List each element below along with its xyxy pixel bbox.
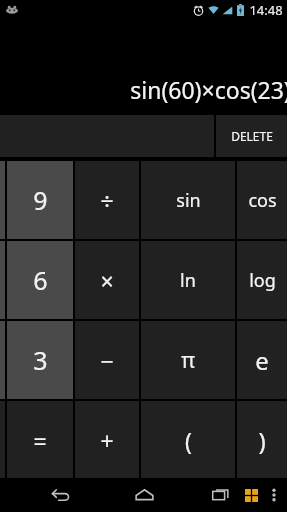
staticText: −	[100, 345, 114, 376]
button[interactable]: More options	[265, 486, 283, 504]
button[interactable]: (	[141, 401, 235, 479]
button[interactable]: 3	[7, 321, 73, 399]
button[interactable]: cos	[237, 161, 287, 239]
button[interactable]: π	[141, 321, 235, 399]
staticText: sin	[176, 188, 201, 213]
staticText: ÷	[100, 185, 114, 216]
staticText: ln	[180, 268, 196, 293]
button[interactable]: Key	[0, 401, 5, 479]
button[interactable]: 9	[7, 161, 73, 239]
button[interactable]: sin	[141, 161, 235, 239]
staticText: sin(60)×cos(23)	[130, 74, 287, 105]
button[interactable]: +	[75, 401, 139, 479]
button[interactable]: DELETE	[216, 115, 287, 157]
button[interactable]: Multi window	[239, 483, 263, 507]
button[interactable]: 6	[7, 241, 73, 319]
staticText: 6	[33, 263, 48, 297]
staticText: 14:48	[249, 1, 283, 19]
button[interactable]: Recent apps	[206, 480, 236, 510]
staticText: )	[258, 424, 266, 457]
button[interactable]: )	[237, 401, 287, 479]
staticText: (	[185, 425, 192, 456]
staticText: +	[100, 425, 114, 456]
button[interactable]: log	[237, 241, 287, 319]
button[interactable]: =	[7, 401, 73, 479]
staticText: 3	[33, 343, 48, 377]
staticText: =	[33, 425, 47, 456]
button[interactable]: e	[237, 321, 287, 399]
staticText: ×	[100, 265, 114, 296]
staticText: DELETE	[231, 128, 273, 144]
button[interactable]: Back	[45, 480, 75, 510]
staticText: e	[255, 344, 269, 377]
staticText: π	[181, 346, 195, 375]
staticText: cos	[248, 188, 277, 213]
button[interactable]: ÷	[75, 161, 139, 239]
staticText: 9	[33, 183, 48, 217]
button[interactable]: ×	[75, 241, 139, 319]
staticText: log	[249, 268, 276, 293]
button[interactable]: −	[75, 321, 139, 399]
button[interactable]: Home	[129, 480, 159, 510]
button[interactable]: ln	[141, 241, 235, 319]
